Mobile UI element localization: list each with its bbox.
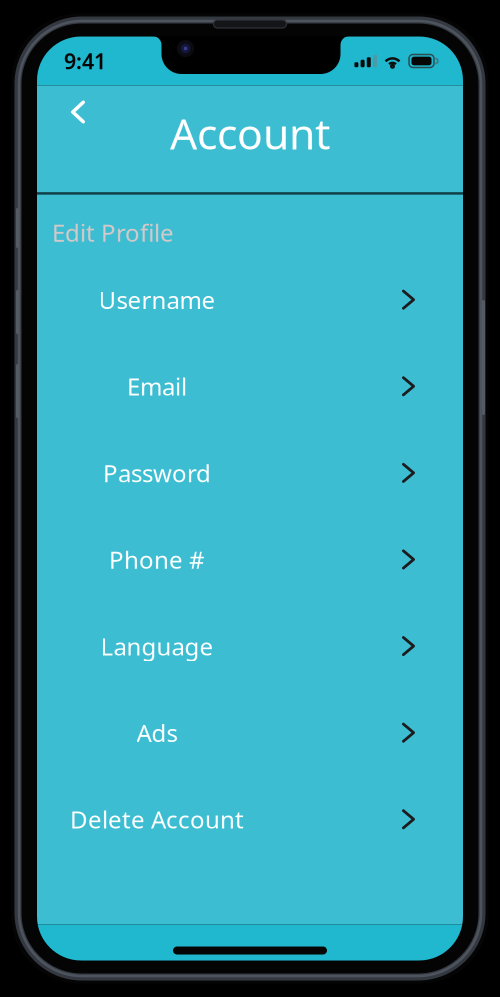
staticText: 9:41	[64, 47, 106, 75]
button[interactable]: Phone #	[37, 516, 463, 603]
button[interactable]: Password	[37, 430, 463, 516]
button[interactable]: Back	[37, 92, 105, 131]
staticText: Ads	[136, 717, 177, 749]
staticText: Delete Account	[70, 803, 244, 835]
staticText: Password	[103, 457, 211, 489]
staticText: Phone #	[109, 543, 205, 575]
staticText: Edit Profile	[52, 216, 174, 248]
button[interactable]: Username	[37, 256, 463, 343]
button[interactable]: Language	[37, 603, 463, 689]
button[interactable]: Delete Account	[37, 776, 463, 863]
button[interactable]: Email	[37, 343, 463, 430]
staticText: Language	[100, 630, 213, 662]
button[interactable]: Ads	[37, 689, 463, 776]
staticText: Account	[170, 105, 330, 161]
staticText: Email	[127, 370, 187, 402]
staticText: Username	[98, 284, 215, 316]
